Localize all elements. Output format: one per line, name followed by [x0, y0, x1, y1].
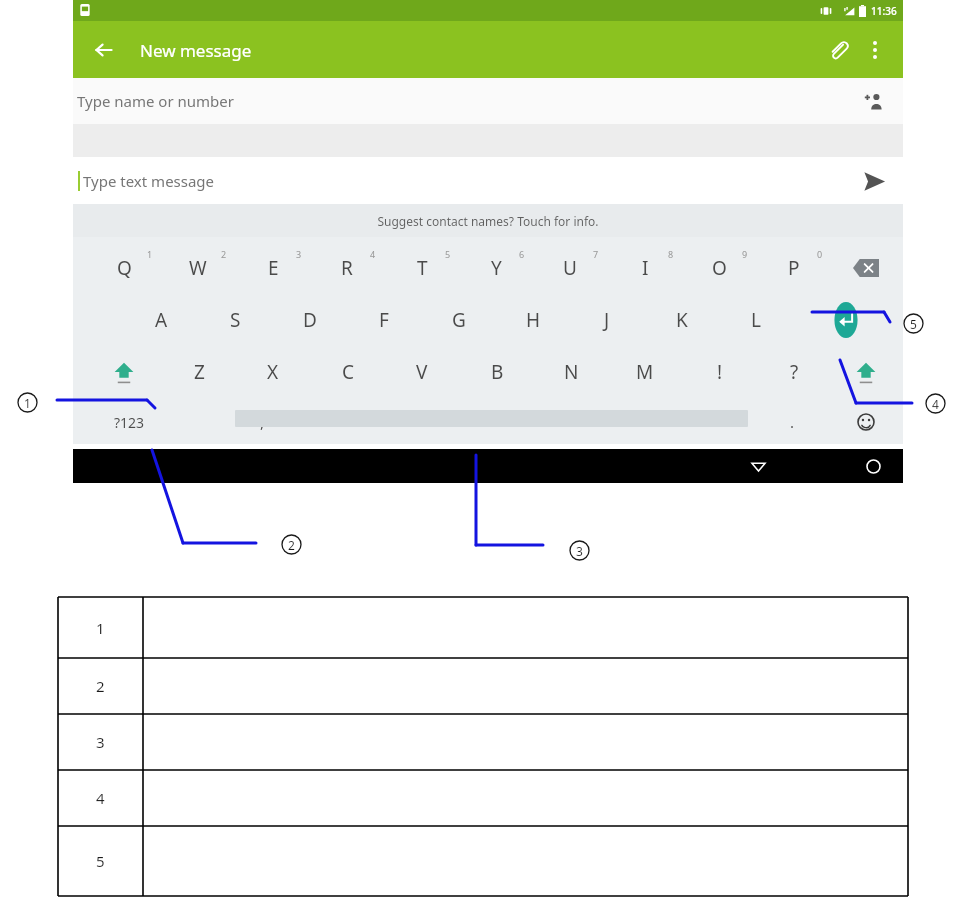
staticText: O	[712, 255, 727, 281]
staticText: Z	[194, 359, 205, 385]
staticText: ,	[260, 412, 265, 432]
button[interactable]: Enter	[810, 298, 882, 342]
staticText: M	[636, 359, 654, 385]
button[interactable]: Shift	[93, 350, 155, 394]
button[interactable]: A	[130, 298, 192, 342]
button[interactable]: Type text message	[73, 157, 903, 204]
button[interactable]: Add contact	[859, 86, 889, 116]
button[interactable]: Emoji	[835, 402, 897, 442]
button[interactable]: Q	[93, 246, 155, 290]
button[interactable]: .	[763, 402, 821, 442]
button[interactable]: B	[466, 350, 528, 394]
button[interactable]: Back	[91, 37, 117, 63]
staticText: 7	[593, 248, 599, 260]
staticText: 3	[576, 543, 583, 559]
staticText: U	[563, 255, 577, 281]
staticText: E	[268, 255, 279, 281]
staticText: 5	[910, 316, 917, 332]
button[interactable]: Y	[465, 246, 527, 290]
button[interactable]: Attach	[821, 33, 855, 67]
staticText: W	[189, 255, 207, 281]
button[interactable]: M	[614, 350, 676, 394]
staticText: 4	[96, 788, 105, 808]
button[interactable]: L	[725, 298, 787, 342]
staticText: R	[341, 255, 353, 281]
button[interactable]: X	[242, 350, 304, 394]
button[interactable]: U	[539, 246, 601, 290]
staticText: V	[416, 359, 428, 385]
button[interactable]: Z	[168, 350, 230, 394]
button[interactable]: F	[353, 298, 415, 342]
button[interactable]: C	[317, 350, 379, 394]
staticText: 5	[445, 248, 451, 260]
staticText: !	[717, 359, 723, 385]
staticText: 1	[24, 395, 31, 411]
staticText: ?	[790, 359, 799, 385]
button[interactable]: E	[242, 246, 304, 290]
button[interactable]: Send	[857, 164, 891, 198]
button[interactable]: S	[204, 298, 266, 342]
staticText: T	[417, 255, 428, 281]
staticText: Y	[491, 255, 502, 281]
staticText: 4	[932, 396, 939, 412]
staticText: 3	[96, 732, 105, 752]
button[interactable]: Type name or number	[73, 78, 903, 124]
button[interactable]: K	[651, 298, 713, 342]
staticText: 0	[817, 248, 823, 260]
button[interactable]: H	[502, 298, 564, 342]
button[interactable]: O	[688, 246, 750, 290]
button[interactable]: P	[763, 246, 825, 290]
button[interactable]: !	[689, 350, 751, 394]
staticText: 2	[288, 537, 295, 553]
staticText: N	[564, 359, 579, 385]
staticText: 1	[147, 248, 153, 260]
staticText: F	[379, 307, 389, 333]
staticText: 3	[296, 248, 302, 260]
staticText: X	[267, 359, 279, 385]
staticText: Q	[117, 255, 132, 281]
button[interactable]: ?	[763, 350, 825, 394]
button[interactable]: N	[540, 350, 602, 394]
staticText: L	[751, 307, 761, 333]
staticText: 11:36	[871, 4, 897, 18]
staticText: A	[155, 307, 168, 333]
staticText: K	[676, 307, 688, 333]
staticText: .	[790, 412, 795, 432]
button[interactable]: D	[279, 298, 341, 342]
button[interactable]: ?123	[93, 402, 165, 442]
staticText: Suggest contact names? Touch for info.	[377, 213, 599, 229]
staticText: B	[491, 359, 504, 385]
staticText: ?123	[114, 413, 145, 432]
staticText: 9	[742, 248, 748, 260]
button[interactable]: T	[391, 246, 453, 290]
staticText: J	[604, 307, 610, 333]
staticText: New message	[140, 39, 252, 62]
staticText: 8	[668, 248, 674, 260]
button[interactable]: W	[167, 246, 229, 290]
staticText: G	[452, 307, 466, 333]
button[interactable]: G	[428, 298, 490, 342]
button[interactable]: Recent apps	[588, 449, 963, 483]
button[interactable]: Back	[343, 449, 963, 483]
button[interactable]: Home	[458, 449, 963, 483]
staticText: C	[342, 359, 355, 385]
button[interactable]: V	[391, 350, 453, 394]
staticText: D	[303, 307, 317, 333]
staticText: I	[642, 255, 649, 281]
button[interactable]: Suggest contact names? Touch for info.	[73, 204, 903, 237]
staticText: 6	[519, 248, 525, 260]
button[interactable]: More options	[859, 34, 891, 66]
staticText: 4	[370, 248, 376, 260]
staticText: S	[230, 307, 241, 333]
button[interactable]: I	[614, 246, 676, 290]
staticText: P	[788, 255, 800, 281]
staticText: 2	[221, 248, 227, 260]
staticText: 5	[96, 851, 105, 871]
button[interactable]: R	[316, 246, 378, 290]
staticText: 1	[96, 618, 105, 638]
button[interactable]: ,	[233, 402, 291, 442]
button[interactable]: Backspace	[835, 246, 897, 290]
button[interactable]: Shift right	[835, 350, 897, 394]
button[interactable]: J	[576, 298, 638, 342]
